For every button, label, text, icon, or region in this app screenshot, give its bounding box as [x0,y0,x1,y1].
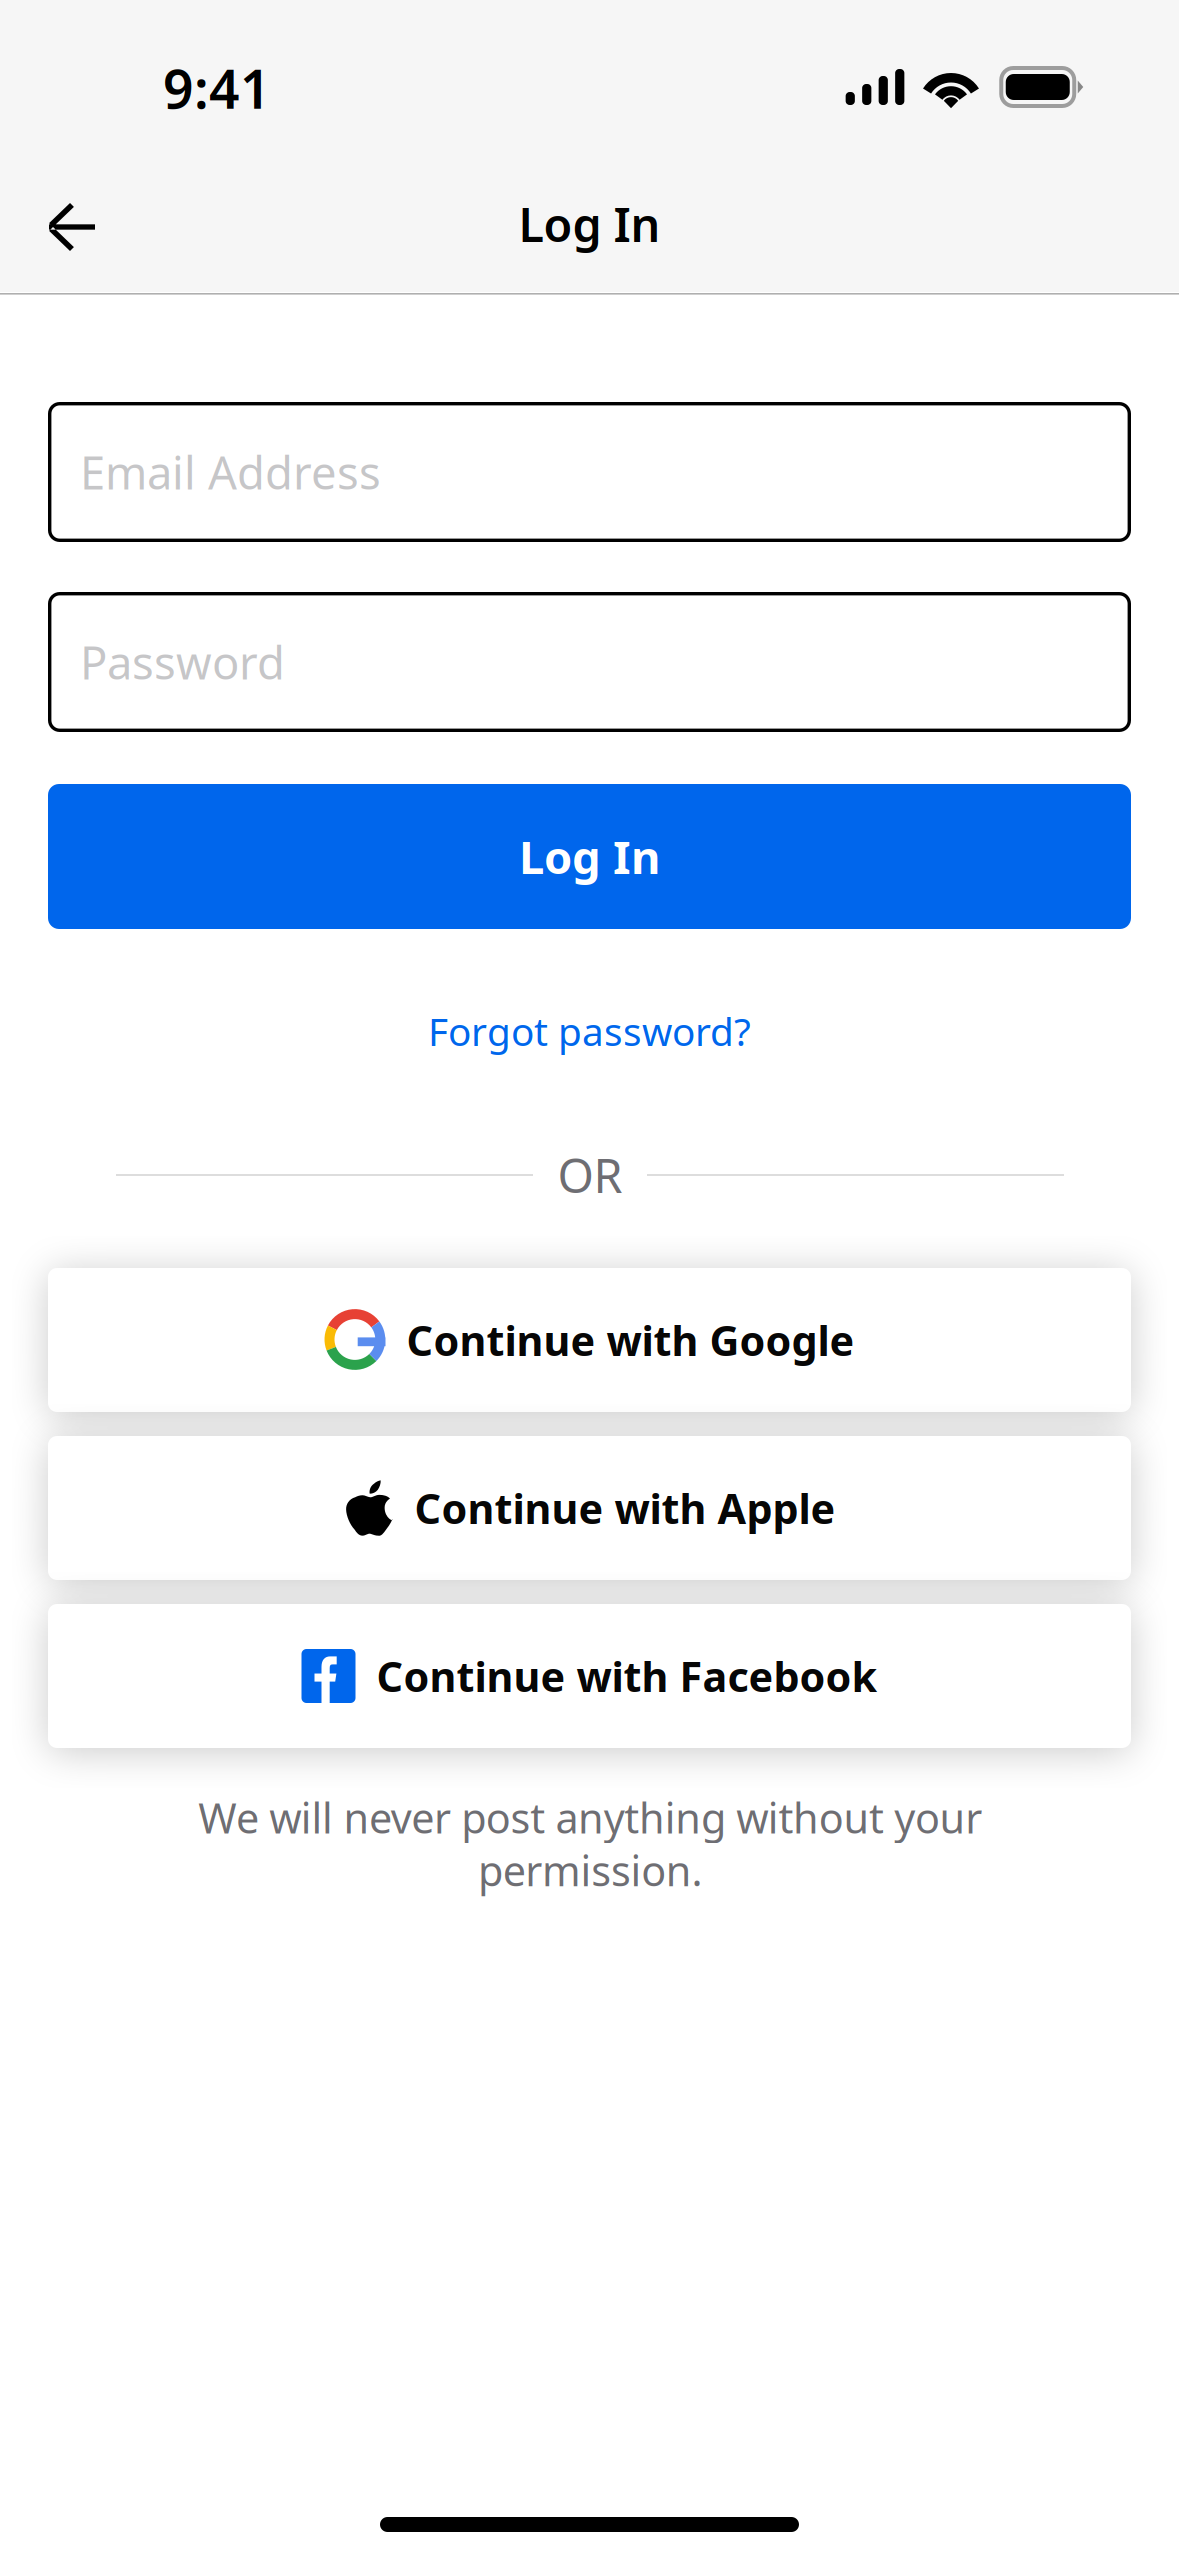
button[interactable]: Continue with Google [48,1268,1131,1412]
staticText: Email Address [80,442,381,502]
staticText: Forgot password? [428,1005,751,1057]
staticText: Log In [518,193,660,255]
staticText: Continue with Apple [414,1481,835,1535]
staticText: Continue with Facebook [376,1649,877,1703]
button[interactable]: Back [17,177,127,277]
staticText: Password [80,632,285,692]
staticText: We will never post anything without your… [198,1790,982,1898]
button[interactable]: Forgot password? [48,1000,1131,1062]
button[interactable]: Log In [48,784,1131,929]
staticText: Continue with Google [406,1313,854,1367]
button[interactable]: Email Address [48,402,1131,542]
button[interactable]: Password [48,592,1131,732]
staticText: OR [557,1144,622,1206]
button[interactable]: Continue with Apple [48,1436,1131,1580]
button[interactable]: Continue with Facebook [48,1604,1131,1748]
staticText: Log In [519,826,660,887]
staticText: 9:41 [163,53,271,123]
